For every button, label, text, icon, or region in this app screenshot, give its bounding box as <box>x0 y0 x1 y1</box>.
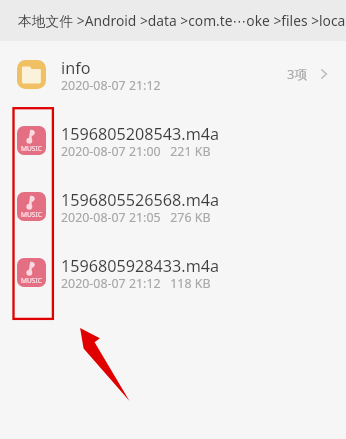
staticText: 2020-08-07 21:00 221 KB <box>61 143 211 160</box>
staticText: 2020-08-07 21:12 <box>61 77 161 94</box>
staticText: 1596805526568.m4a <box>61 189 220 211</box>
button[interactable]: MUSIC <box>0 173 346 239</box>
other: Open folder <box>316 66 332 82</box>
button[interactable]: info <box>0 41 346 107</box>
staticText: 1596805928433.m4a <box>61 255 220 277</box>
button[interactable]: MUSIC <box>0 107 346 173</box>
staticText: MUSIC <box>21 210 42 219</box>
staticText: 1596805208543.m4a <box>61 123 220 145</box>
staticText: 本地文件 >Android >data >com.te⋯oke >files >… <box>18 11 346 30</box>
staticText: MUSIC <box>21 144 42 153</box>
staticText: 3项 <box>287 65 308 83</box>
staticText: info <box>61 57 91 79</box>
staticText: MUSIC <box>21 276 42 285</box>
staticText: 2020-08-07 21:12 118 KB <box>61 275 211 292</box>
staticText: 2020-08-07 21:05 276 KB <box>61 209 211 226</box>
button[interactable]: MUSIC <box>0 239 346 305</box>
button[interactable]: 本地文件 >Android >data >com.te⋯oke >files >… <box>0 0 346 41</box>
